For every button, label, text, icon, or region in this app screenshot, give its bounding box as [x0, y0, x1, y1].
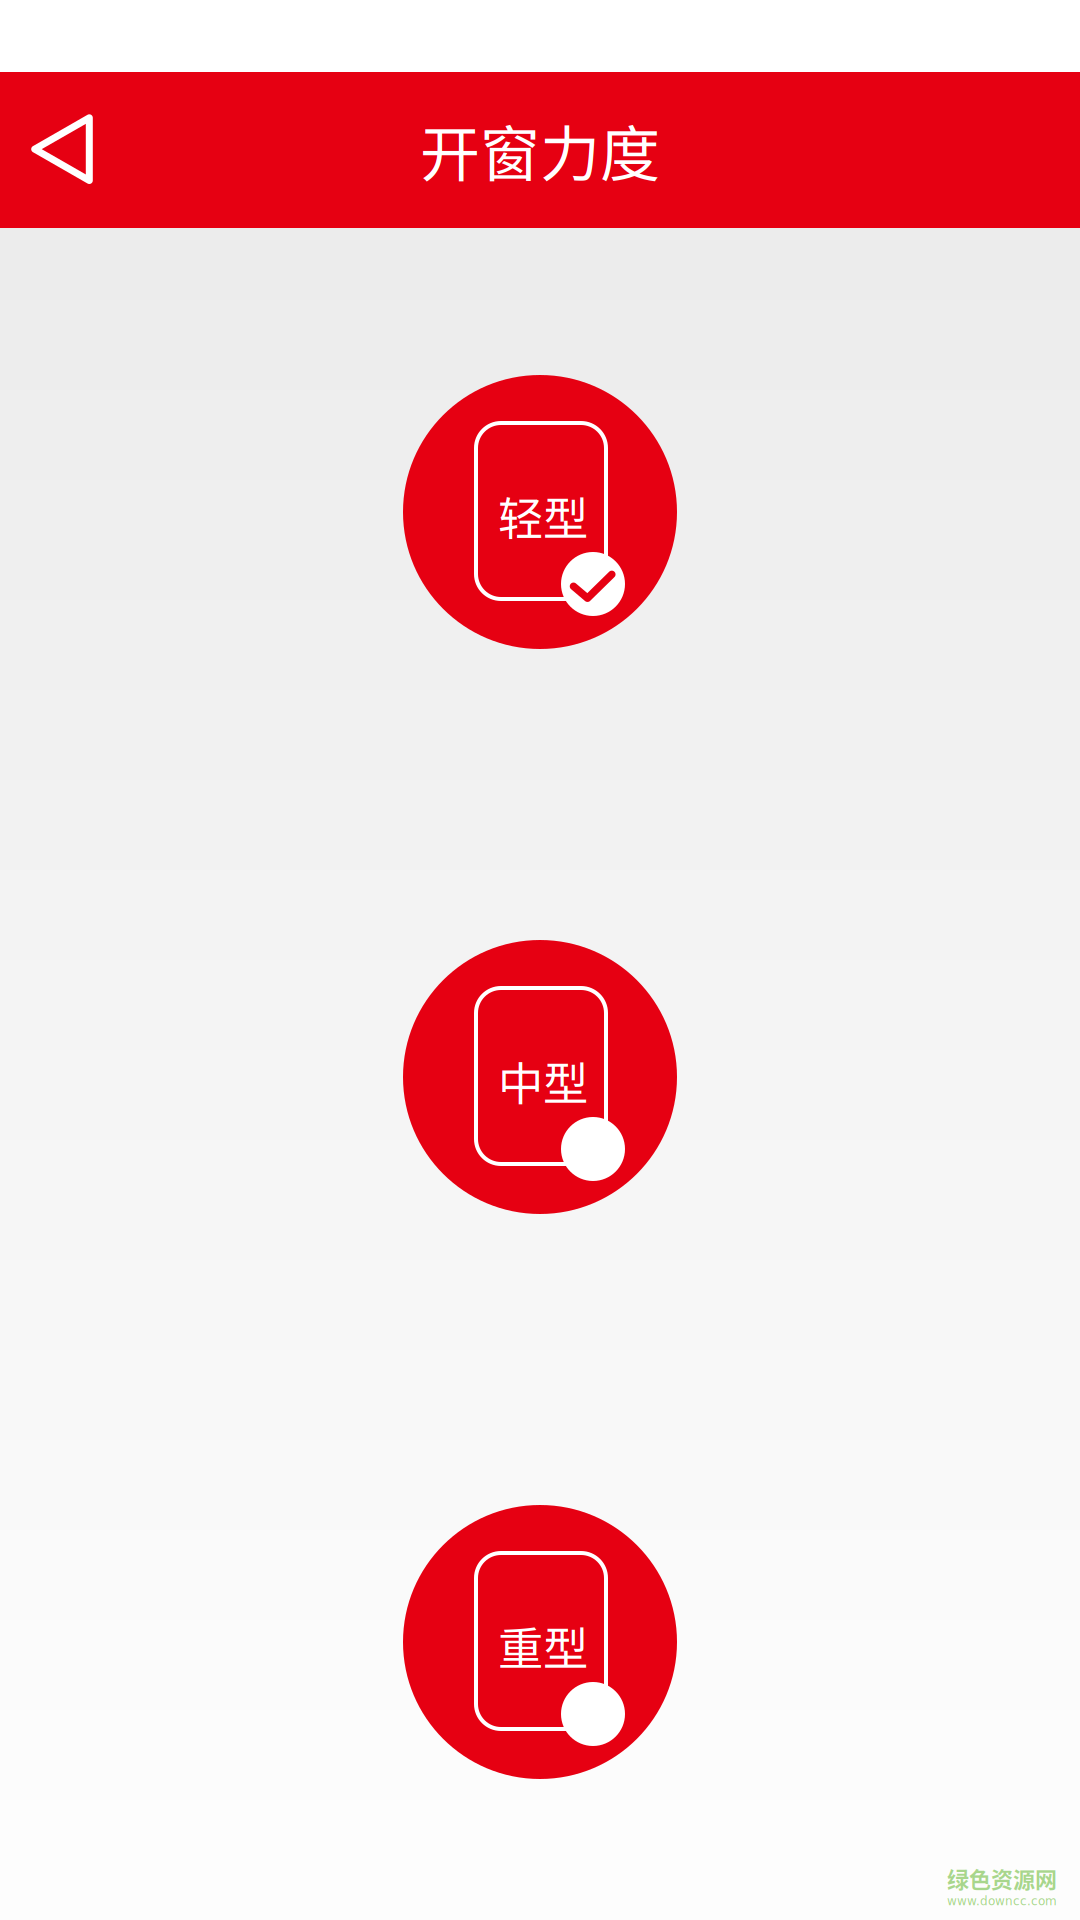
button[interactable]: 重型 [403, 1505, 677, 1779]
button[interactable]: Back [0, 72, 120, 228]
staticText: 重型 [498, 1613, 588, 1679]
staticText: 开窗力度 [420, 107, 660, 193]
staticText: 轻型 [498, 483, 588, 549]
staticText: 绿色资源网 [947, 1862, 1057, 1894]
staticText: www.downcc.com [947, 1894, 1057, 1908]
staticText: 中型 [498, 1048, 588, 1114]
button[interactable]: 轻型 [403, 375, 677, 649]
button[interactable]: 中型 [403, 940, 677, 1214]
